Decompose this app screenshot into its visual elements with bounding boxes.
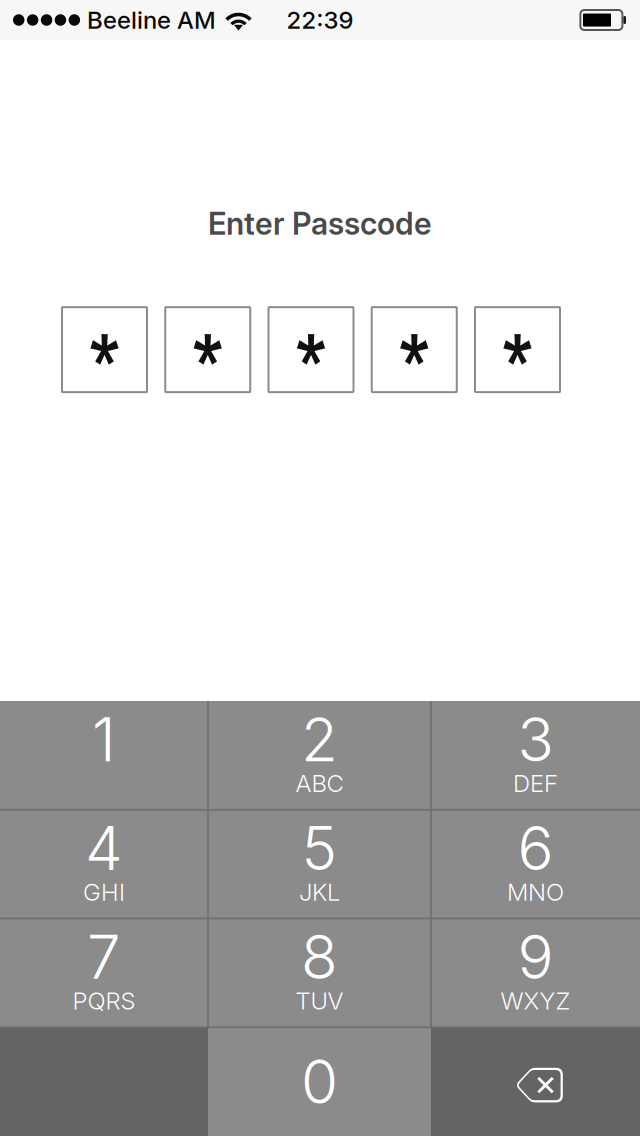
staticText: Enter Passcode: [208, 205, 432, 242]
staticText: 9: [517, 921, 553, 993]
staticText: DEF: [513, 769, 558, 798]
staticText: PQRS: [72, 986, 135, 1015]
staticText: 22:39: [286, 5, 353, 34]
staticText: JKL: [299, 878, 340, 907]
staticText: 6: [517, 812, 553, 884]
staticText: TUV: [295, 986, 343, 1015]
button[interactable]: 7: [0, 918, 208, 1027]
button[interactable]: 3: [431, 701, 640, 810]
staticText: 0: [301, 1045, 338, 1118]
staticText: ABC: [295, 769, 343, 798]
staticText: 7: [87, 921, 121, 993]
staticText: 8: [301, 921, 338, 993]
staticText: 3: [517, 703, 553, 776]
button[interactable]: 4: [0, 810, 208, 919]
staticText: Beeline AM: [87, 5, 216, 34]
button[interactable]: 0: [208, 1027, 431, 1136]
button[interactable]: 2: [208, 701, 431, 810]
button[interactable]: Delete: [431, 1027, 640, 1136]
staticText: WXYZ: [500, 986, 570, 1015]
staticText: GHI: [83, 878, 125, 907]
staticText: 4: [85, 812, 123, 884]
button[interactable]: 5: [208, 810, 431, 919]
button[interactable]: 8: [208, 918, 431, 1027]
staticText: MNO: [507, 878, 564, 907]
button[interactable]: 6: [431, 810, 640, 919]
staticText: 1: [92, 703, 116, 776]
staticText: 2: [301, 703, 338, 776]
button[interactable]: 1: [0, 701, 208, 810]
staticText: 5: [301, 812, 337, 884]
button[interactable]: 9: [431, 918, 640, 1027]
